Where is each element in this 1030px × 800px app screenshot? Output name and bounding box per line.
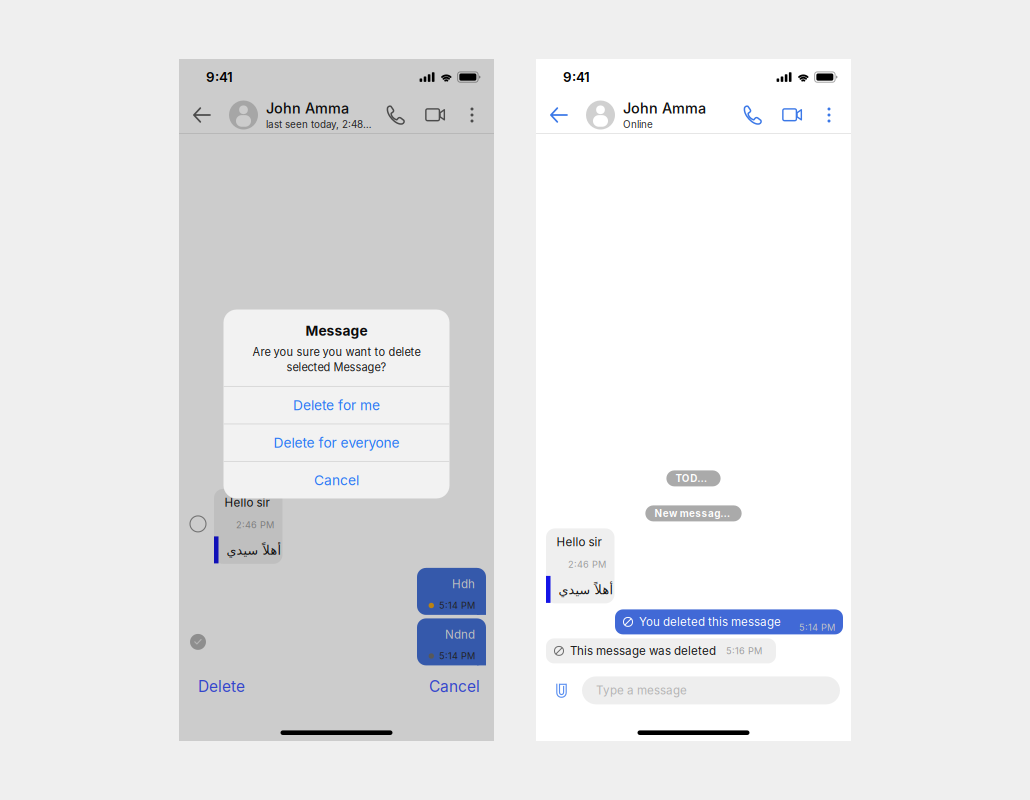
button[interactable]: Delete [192, 672, 251, 701]
button[interactable]: Cancel [423, 672, 481, 701]
button[interactable]: Delete for me [223, 387, 449, 423]
staticText: Are you sure you want to delete [252, 345, 420, 359]
staticText: Hello sir [556, 535, 601, 549]
button[interactable]: More options [818, 93, 840, 137]
button[interactable]: Cancel [223, 462, 449, 498]
staticText: 2:46 PM [568, 559, 606, 570]
button[interactable]: Attach file [549, 677, 574, 703]
staticText: John Amma [623, 100, 706, 117]
staticText: Ndnd [445, 627, 475, 641]
button[interactable]: Voice call [735, 93, 769, 137]
staticText: Cancel [314, 472, 359, 488]
staticText: أهلاً سيدي [226, 543, 281, 558]
staticText: You deleted this message [639, 615, 781, 629]
button[interactable]: Back [186, 93, 218, 137]
staticText: 5:14 PM [439, 650, 475, 661]
staticText: Hello sir [224, 495, 269, 509]
button[interactable]: Voice call [378, 93, 412, 137]
staticText: John Amma [266, 100, 349, 117]
staticText: Delete for everyone [273, 434, 399, 451]
staticText: last seen today, 2:48… [266, 118, 372, 130]
staticText: 5:14 PM [799, 622, 835, 633]
staticText: 5:16 PM [726, 645, 762, 656]
staticText: 2:46 PM [236, 519, 274, 530]
staticText: Message [305, 323, 367, 339]
staticText: Type a message [596, 683, 687, 697]
staticText: 9:41 [563, 69, 590, 85]
staticText: selected Message? [286, 361, 386, 374]
button[interactable]: Video call [418, 93, 452, 137]
staticText: Delete [198, 677, 245, 696]
button[interactable]: Delete for everyone [223, 424, 449, 461]
staticText: New messages [654, 507, 732, 519]
staticText: Delete for me [293, 397, 380, 413]
button[interactable]: Video call [775, 93, 809, 137]
button[interactable]: Type a message [582, 676, 840, 704]
staticText: Online [623, 118, 653, 130]
staticText: 9:41 [206, 69, 233, 85]
button[interactable]: John Amma [229, 93, 372, 137]
button[interactable]: Back [543, 93, 575, 137]
staticText: 5:14 PM [439, 600, 475, 611]
staticText: Cancel [429, 677, 480, 696]
staticText: Hdh [452, 577, 475, 591]
staticText: This message was deleted [570, 644, 716, 658]
staticText: TODAY [676, 472, 711, 484]
button[interactable]: More options [461, 93, 483, 137]
staticText: أهلاً سيدي [558, 582, 613, 597]
button[interactable]: John Amma [586, 93, 706, 137]
